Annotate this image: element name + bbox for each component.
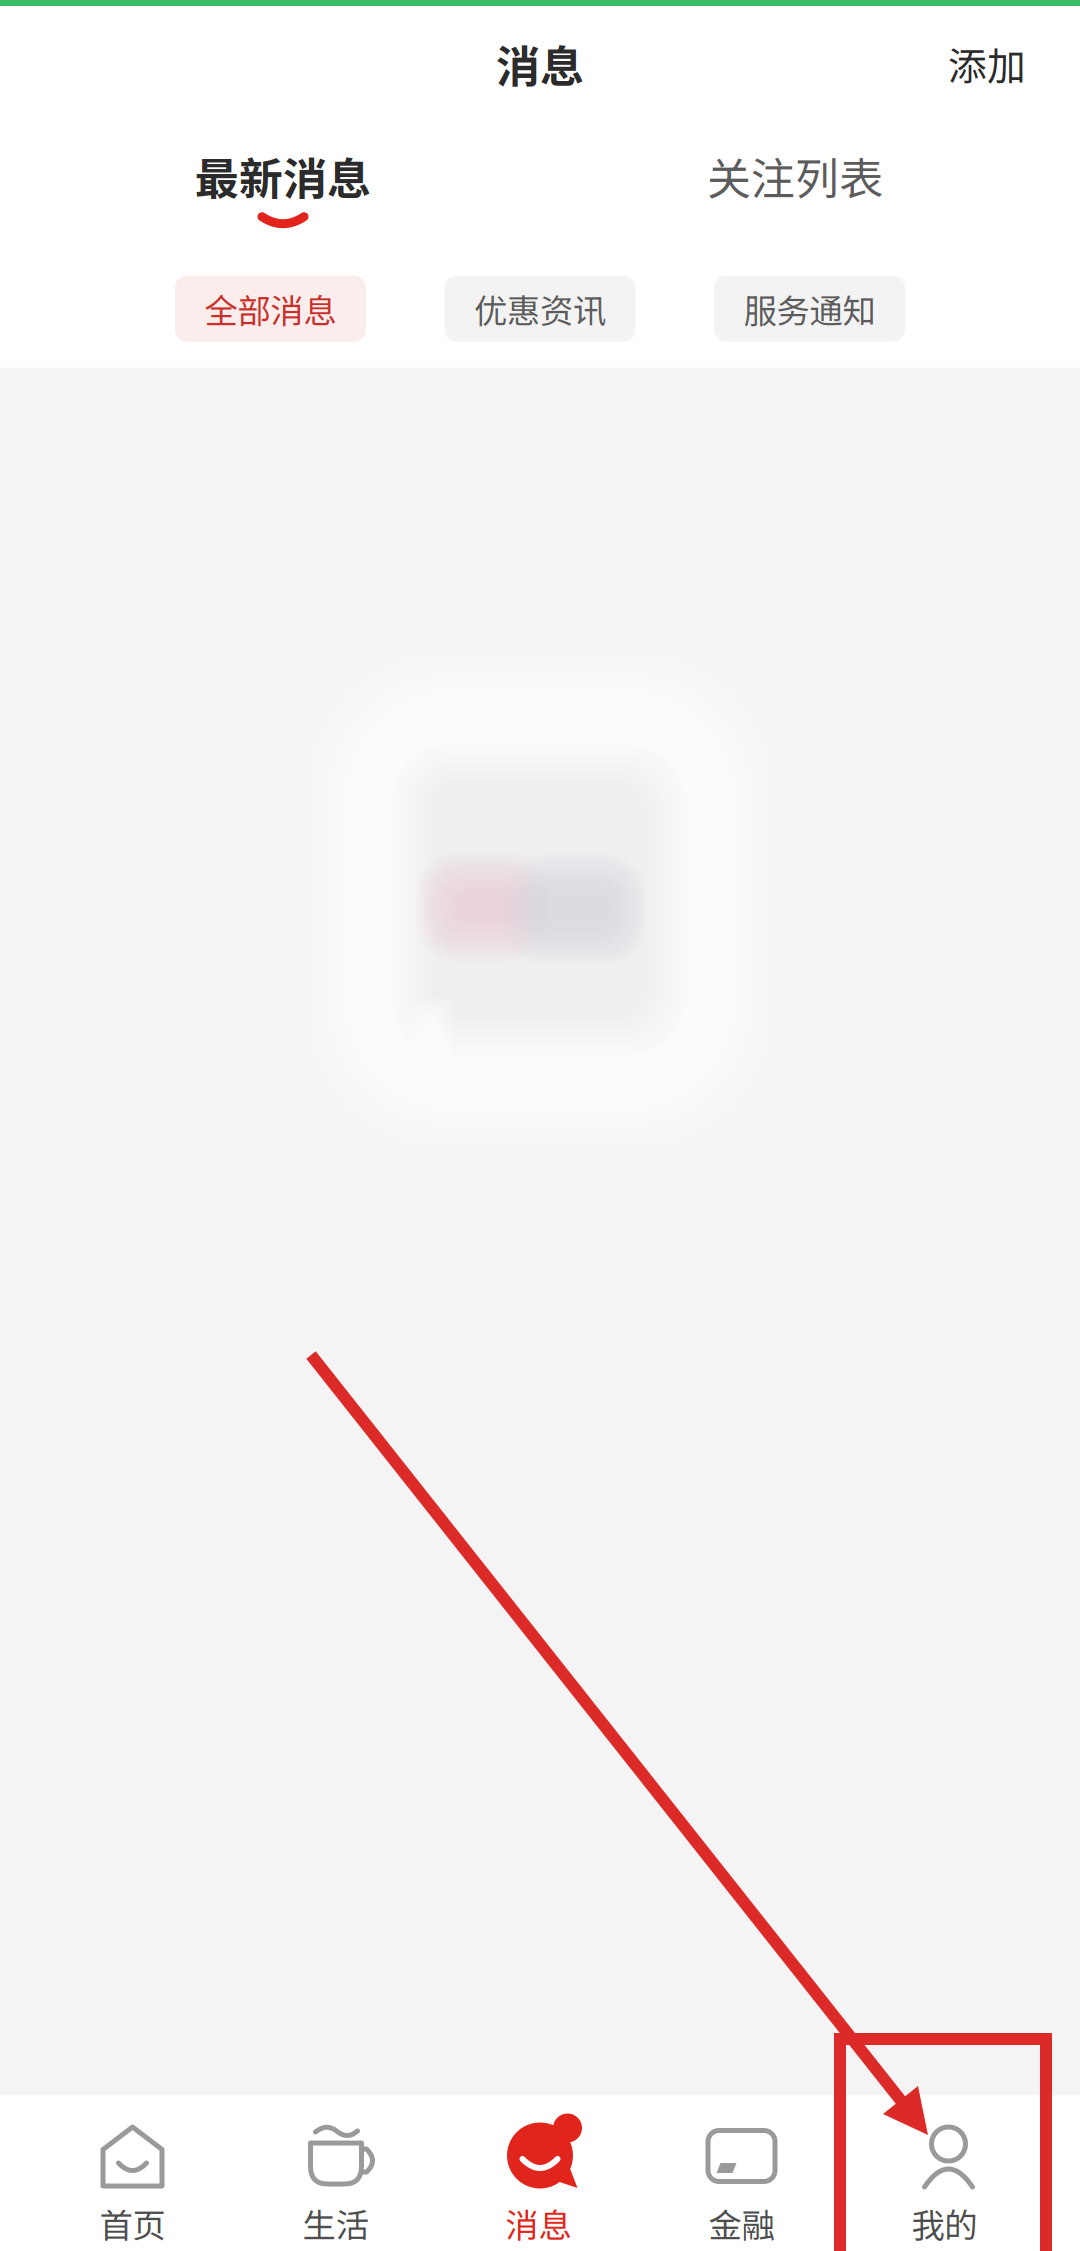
button[interactable]: 我的 — [843, 2095, 1080, 2251]
button[interactable]: 优惠资讯 — [444, 276, 635, 342]
staticText: 优惠资讯 — [474, 285, 606, 333]
button[interactable]: 金融 — [640, 2095, 843, 2251]
staticText: 消息 — [496, 32, 584, 95]
button[interactable]: 首页 — [0, 2095, 234, 2251]
button[interactable]: 添加 — [934, 23, 1040, 103]
button[interactable]: 最新消息 — [168, 144, 398, 230]
staticText: 金融 — [708, 2199, 774, 2247]
staticText: 我的 — [911, 2199, 977, 2247]
staticText: 添加 — [948, 35, 1026, 91]
button[interactable]: 消息 — [437, 2095, 640, 2251]
staticText: 生活 — [302, 2199, 368, 2247]
staticText: 服务通知 — [743, 285, 875, 333]
staticText: 全部消息 — [204, 285, 336, 333]
staticText: 消息 — [505, 2199, 571, 2247]
button[interactable]: 关注列表 — [680, 144, 910, 196]
staticText: 首页 — [99, 2199, 165, 2247]
button[interactable]: 全部消息 — [175, 276, 366, 342]
staticText: 关注列表 — [707, 144, 883, 208]
button[interactable]: 生活 — [234, 2095, 437, 2251]
staticText: 最新消息 — [195, 144, 371, 208]
button[interactable]: 服务通知 — [714, 276, 905, 342]
